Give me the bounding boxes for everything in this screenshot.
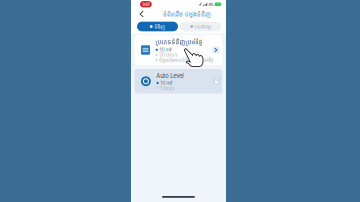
staticText: 10 mℓ xyxy=(160,80,172,86)
button[interactable]: ទំនិញ xyxy=(137,22,178,31)
staticText: 9:57 xyxy=(142,2,149,7)
staticText: Auto Level xyxy=(156,72,183,79)
staticText: 4G xyxy=(209,2,214,7)
button[interactable]: Back xyxy=(135,8,148,19)
staticText: 30 days xyxy=(159,52,178,58)
button[interactable]: Auto Level xyxy=(134,69,222,93)
staticText: ចំនួនបរិមាណទំនិញសរុបប្រចាំថ្ងៃ xyxy=(159,56,213,63)
button[interactable]: សេវាកម្ម xyxy=(180,22,221,31)
staticText: ប្រភេទទំនិញប្រចាំថ្ងៃ xyxy=(155,38,202,46)
button[interactable]: ប្រភេទទំនិញប្រចាំថ្ងៃ xyxy=(134,35,222,65)
staticText: 10 mℓ xyxy=(159,47,171,53)
staticText: 1 days xyxy=(160,85,175,91)
staticText: សេវាកម្ម xyxy=(195,23,211,30)
staticText: ទំនិញ xyxy=(154,23,165,30)
staticText: ទំព័រដើម ចម្លងទំនិញ xyxy=(163,10,211,18)
